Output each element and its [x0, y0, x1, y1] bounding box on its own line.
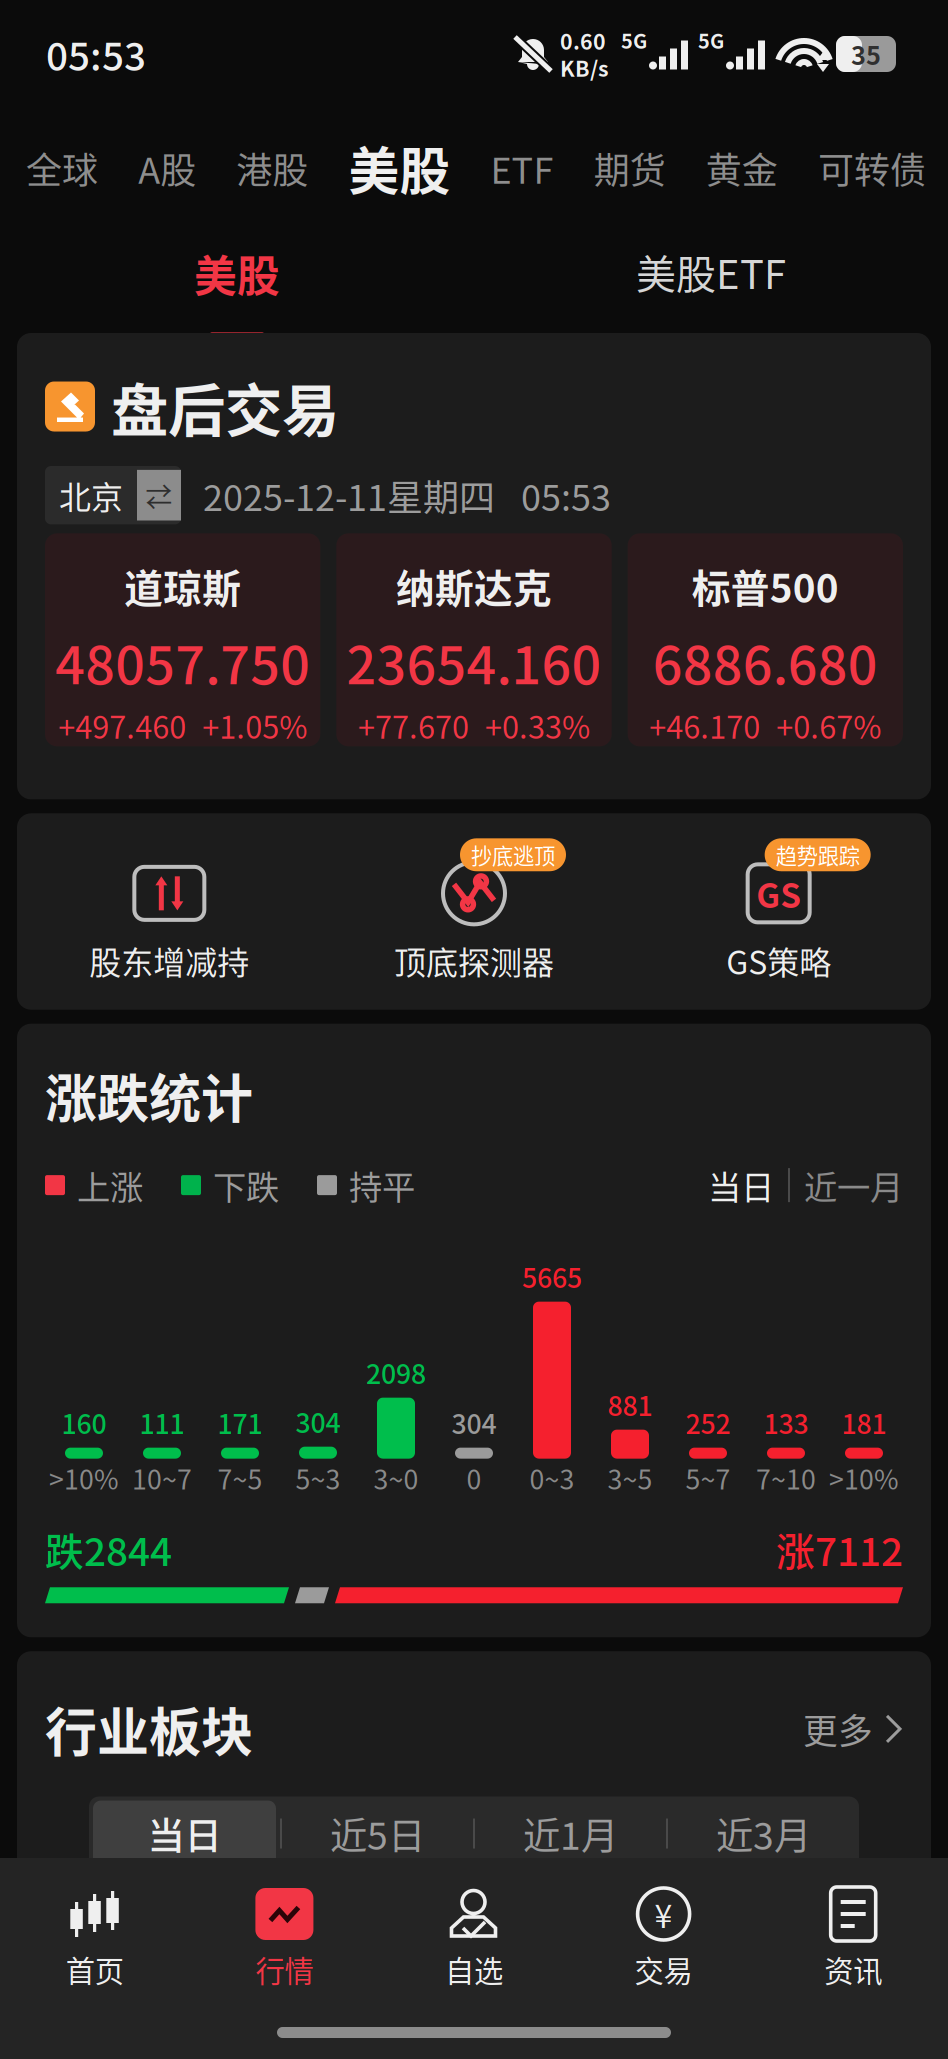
button[interactable]: 近一月 — [804, 1161, 903, 1209]
staticText: A股 — [138, 142, 196, 194]
staticText: 道琼斯 — [124, 558, 241, 614]
staticText: +1.05% — [202, 703, 307, 748]
staticText: 持平 — [349, 1161, 415, 1209]
staticText: 全球 — [26, 142, 98, 194]
staticText: 7~5 — [217, 1459, 262, 1497]
button[interactable]: 可转债 — [818, 138, 926, 198]
button[interactable]: 当日 — [708, 1161, 774, 1209]
button[interactable]: 黄金 — [706, 138, 778, 198]
staticText: 标普500 — [692, 558, 839, 614]
button[interactable]: 港股 — [236, 138, 308, 198]
button[interactable]: A股 — [138, 138, 196, 198]
button[interactable]: 标普500 — [628, 533, 903, 746]
staticText: 3~5 — [607, 1459, 652, 1497]
staticText: 可转债 — [818, 142, 926, 194]
staticText: 资讯 — [824, 1948, 882, 1990]
staticText: 5~3 — [295, 1459, 340, 1497]
staticText: 0.60 — [560, 25, 606, 56]
button[interactable]: 纳斯达克 — [336, 533, 612, 746]
staticText: 近一月 — [804, 1161, 903, 1209]
staticText: 2025-12-11星期四 — [203, 469, 495, 521]
staticText: 近5日 — [330, 1806, 425, 1861]
staticText: 当日 — [147, 1806, 221, 1861]
button[interactable]: 美股 — [0, 221, 474, 340]
staticText: 盘后交易 — [111, 365, 339, 448]
staticText: 181 — [841, 1403, 886, 1442]
staticText: 下跌 — [213, 1161, 279, 1209]
staticText: 交易 — [635, 1948, 693, 1990]
staticText: +0.67% — [776, 703, 881, 748]
staticText: 抄底逃顶 — [471, 839, 555, 870]
staticText: 304 — [451, 1403, 496, 1442]
button[interactable]: 当日 — [89, 1796, 280, 1870]
button[interactable]: 道琼斯 — [45, 533, 320, 746]
staticText: GS策略 — [726, 937, 831, 984]
button[interactable]: 抄底逃顶 — [322, 855, 626, 984]
staticText: 2098 — [366, 1353, 426, 1392]
staticText: 自选 — [445, 1948, 503, 1990]
staticText: 美股 — [348, 131, 450, 205]
button[interactable]: 近1月 — [475, 1796, 666, 1870]
staticText: 171 — [217, 1403, 262, 1442]
staticText: GS — [756, 869, 801, 917]
staticText: 涨7112 — [776, 1521, 903, 1577]
staticText: 5G — [698, 25, 724, 54]
button[interactable]: ¥ — [569, 1886, 758, 1990]
staticText: +77.670 — [358, 703, 469, 748]
button[interactable]: 行情 — [190, 1886, 379, 1990]
staticText: 6886.680 — [653, 624, 878, 699]
staticText: 期货 — [594, 142, 666, 194]
staticText: 05:53 — [521, 469, 611, 521]
staticText: >10% — [829, 1459, 899, 1497]
staticText: 黄金 — [706, 142, 778, 194]
staticText: 160 — [61, 1403, 106, 1442]
button[interactable]: 近5日 — [282, 1796, 473, 1870]
staticText: 111 — [139, 1403, 184, 1442]
staticText: 行业板块 — [45, 1691, 253, 1766]
button[interactable]: 近3月 — [668, 1796, 859, 1870]
button[interactable]: 股东增减持 — [17, 855, 322, 984]
staticText: +46.170 — [649, 703, 760, 748]
staticText: >10% — [49, 1459, 119, 1497]
staticText: KB/s — [560, 52, 609, 83]
staticText: 0 — [466, 1459, 481, 1497]
staticText: 美股 — [194, 243, 280, 304]
staticText: 顶底探测器 — [394, 937, 554, 984]
staticText: ⇄ — [145, 476, 172, 514]
staticText: 股东增减持 — [89, 937, 249, 984]
button[interactable]: 更多 — [803, 1704, 903, 1754]
staticText: 首页 — [66, 1948, 124, 1990]
staticText: ETF — [491, 142, 554, 194]
button[interactable]: GS — [626, 855, 931, 984]
staticText: 北京 — [59, 472, 123, 518]
button[interactable]: 期货 — [594, 138, 666, 198]
button[interactable]: ETF — [491, 138, 554, 198]
staticText: 10~7 — [132, 1459, 192, 1497]
staticText: 133 — [763, 1403, 808, 1442]
staticText: 5G — [621, 25, 647, 54]
staticText: 行情 — [255, 1948, 313, 1990]
staticText: 港股 — [236, 142, 308, 194]
staticText: 近1月 — [523, 1806, 618, 1861]
staticText: 当日 — [708, 1161, 774, 1209]
staticText: +497.460 — [58, 703, 186, 748]
staticText: 48057.750 — [55, 624, 310, 699]
staticText: 05:53 — [46, 26, 146, 82]
staticText: 涨跌统计 — [45, 1058, 253, 1133]
staticText: 5665 — [522, 1257, 582, 1296]
staticText: 上涨 — [77, 1161, 143, 1209]
button[interactable]: 美股ETF — [474, 221, 948, 336]
button[interactable]: 美股 — [348, 138, 450, 198]
staticText: 7~10 — [756, 1459, 816, 1497]
staticText: 跌2844 — [45, 1521, 172, 1577]
staticText: ¥ — [655, 1891, 673, 1937]
staticText: 304 — [295, 1402, 340, 1441]
staticText: 5~7 — [685, 1459, 730, 1497]
staticText: 35 — [851, 36, 881, 72]
button[interactable]: 首页 — [0, 1886, 190, 1990]
button[interactable]: 全球 — [26, 138, 98, 198]
staticText: 更多 — [803, 1704, 873, 1754]
button[interactable]: 资讯 — [758, 1886, 948, 1990]
staticText: 3~0 — [373, 1459, 418, 1497]
button[interactable]: 自选 — [379, 1886, 569, 1990]
